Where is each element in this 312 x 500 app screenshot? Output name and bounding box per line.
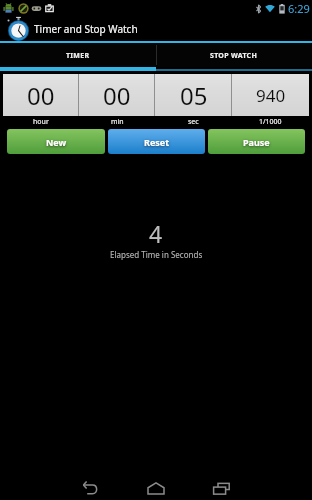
staticText: hour: [33, 117, 49, 127]
button[interactable]: STOP WATCH: [156, 43, 312, 67]
staticText: 00: [103, 79, 131, 112]
staticText: TIMER: [66, 51, 90, 61]
staticText: min: [111, 117, 124, 127]
button[interactable]: TIMER: [0, 43, 156, 67]
button[interactable]: 00: [79, 74, 155, 116]
staticText: Pause: [243, 136, 270, 148]
staticText: Timer and Stop Watch: [34, 22, 138, 36]
staticText: 00: [27, 79, 55, 112]
staticText: 6:29: [288, 1, 310, 16]
staticText: New: [46, 136, 67, 148]
staticText: 05: [180, 79, 208, 112]
button[interactable]: 00: [3, 74, 79, 116]
button[interactable]: Back: [69, 471, 111, 500]
button[interactable]: 940: [232, 74, 309, 116]
staticText: 4: [149, 218, 163, 249]
button[interactable]: Pause: [208, 129, 305, 154]
staticText: 1/1000: [259, 117, 282, 127]
button[interactable]: New: [7, 129, 105, 154]
button[interactable]: Recent apps: [201, 471, 243, 500]
staticText: Reset: [144, 136, 170, 148]
staticText: sec: [188, 117, 199, 127]
staticText: 940: [256, 84, 286, 107]
button[interactable]: Reset: [108, 129, 205, 154]
staticText: STOP WATCH: [210, 51, 258, 61]
staticText: Elapsed Time in Seconds: [110, 249, 203, 260]
button[interactable]: Home: [135, 471, 177, 500]
button[interactable]: 05: [155, 74, 232, 116]
